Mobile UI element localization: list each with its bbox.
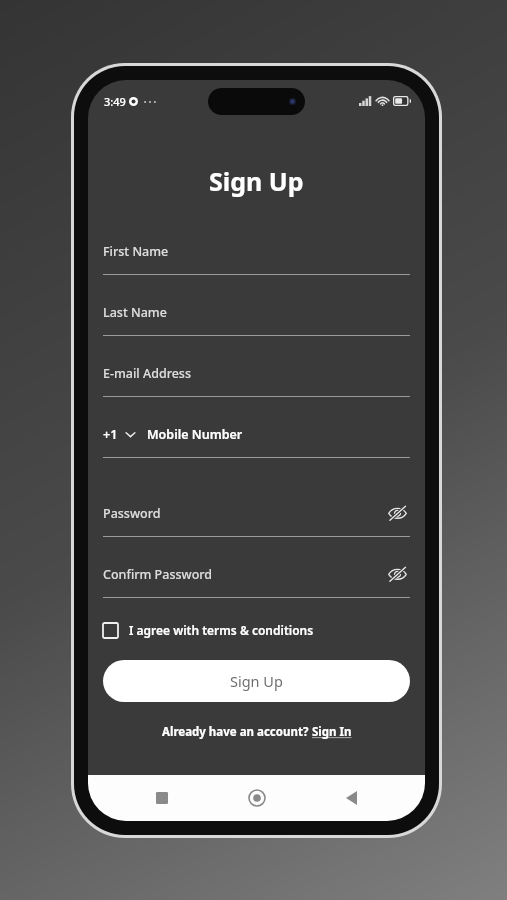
button[interactable]: Back — [331, 778, 371, 818]
staticText: Sign Up — [209, 164, 304, 198]
button[interactable]: Home — [237, 778, 277, 818]
staticText: Password — [103, 505, 161, 522]
button[interactable]: E-mail Address — [103, 358, 410, 397]
staticText: Last Name — [103, 304, 167, 321]
staticText: E-mail Address — [103, 365, 192, 382]
button[interactable]: +1 — [103, 419, 410, 458]
button[interactable]: Show password — [384, 500, 410, 526]
staticText: Mobile Number — [147, 426, 243, 443]
staticText: Sign Up — [230, 671, 283, 691]
button[interactable]: Confirm Password — [103, 559, 410, 598]
button[interactable]: Recents — [142, 778, 182, 818]
button[interactable]: Password — [103, 498, 410, 537]
button[interactable]: Sign Up — [103, 660, 410, 702]
button[interactable]: I agree with terms & conditions — [103, 622, 410, 638]
staticText: Confirm Password — [103, 566, 213, 583]
staticText: Sign In — [312, 724, 352, 740]
staticText: Already have an account? — [162, 724, 312, 740]
staticText: I agree with terms & conditions — [129, 622, 314, 638]
button[interactable]: Show password — [384, 561, 410, 587]
staticText: First Name — [103, 243, 169, 260]
button[interactable]: First Name — [103, 236, 410, 275]
button[interactable]: Sign In — [312, 724, 352, 740]
staticText: 3:49 — [104, 94, 126, 109]
button[interactable]: Last Name — [103, 297, 410, 336]
staticText: +1 — [103, 426, 118, 443]
